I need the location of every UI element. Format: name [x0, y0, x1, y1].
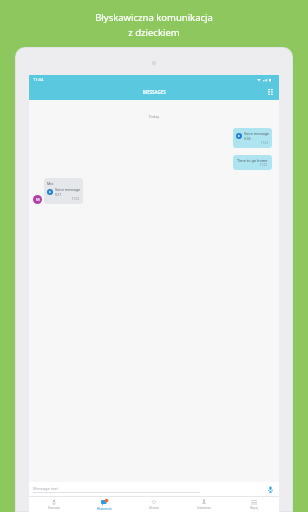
staticText: Voice message — [55, 187, 80, 192]
staticText: Mio — [47, 181, 54, 186]
button[interactable]: Message text — [33, 486, 265, 493]
staticText: 0:11 — [55, 192, 62, 197]
staticText: Zdrowie — [149, 506, 159, 510]
staticText: Błyskawiczna komunikacja — [95, 11, 213, 24]
staticText: 11:12 — [260, 163, 268, 167]
staticText: Time to go home — [237, 158, 268, 163]
staticText: Więcej — [250, 506, 258, 510]
staticText: MESSAGES — [143, 89, 166, 95]
staticText: Today — [29, 114, 279, 119]
button[interactable]: Zdrowie — [129, 497, 179, 512]
button[interactable]: Mio — [44, 178, 83, 204]
staticText: 0:06 — [244, 136, 251, 141]
button[interactable]: Więcej — [229, 497, 279, 512]
button[interactable]: Rozmowa — [29, 497, 79, 512]
button[interactable]: Record voice message — [265, 484, 275, 494]
staticText: Ustawienia — [197, 506, 211, 510]
button[interactable]: Ustawienia — [179, 497, 229, 512]
button[interactable]: Wiadomości — [79, 497, 129, 512]
staticText: Message text — [33, 486, 58, 491]
staticText: Rozmowa — [48, 506, 60, 510]
staticText: Voice message — [244, 131, 269, 136]
staticText: 11:04 — [33, 77, 44, 82]
staticText: Wiadomości — [97, 507, 112, 511]
button[interactable]: Mio avatar — [33, 195, 42, 204]
staticText: M — [36, 197, 40, 202]
button[interactable]: Voice message — [233, 128, 272, 148]
button[interactable]: Menu — [266, 87, 276, 97]
staticText: 11:12 — [72, 197, 80, 201]
button[interactable]: Time to go home — [233, 155, 272, 170]
staticText: z dzieckiem — [128, 26, 180, 39]
staticText: 11:12 — [261, 141, 269, 145]
